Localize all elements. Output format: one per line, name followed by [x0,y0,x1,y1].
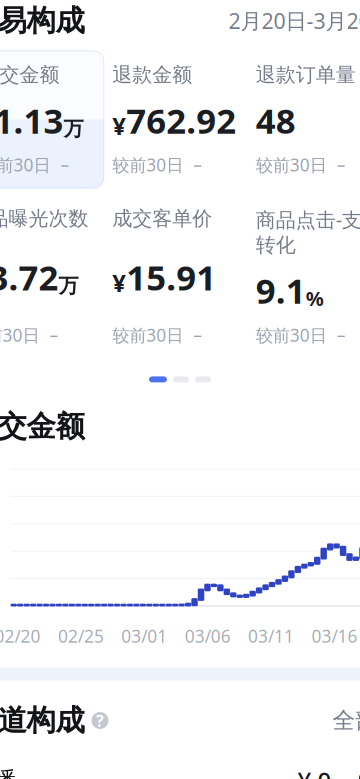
staticText: 1.13 [0,97,63,143]
staticText: 退款订单量 [256,63,356,87]
staticText: ¥ [112,110,126,142]
staticText: ¥ 0 [297,764,331,779]
staticText: 较前30日 – [0,323,58,346]
staticText: 较前30日 – [112,323,202,346]
staticText: 02/25 [58,624,104,647]
staticText: ¥ [112,267,126,299]
button[interactable]: 全部 [332,707,360,734]
staticText: 48 [256,97,296,143]
staticText: 成交金额 [0,408,84,444]
staticText: 15.91 [126,254,216,300]
staticText: 成交客单价 [112,206,212,231]
staticText: 全部 [332,707,360,734]
staticText: 万 [58,274,78,298]
staticText: 02/20 [0,624,40,647]
staticText: 较前30日 – [256,323,346,346]
staticText: 03/06 [185,624,231,647]
staticText: 交易构成 [0,3,84,39]
staticText: 2月20日-3月20日 [228,6,360,35]
staticText: 03/16 [311,624,357,647]
staticText: 商品点击-支付转化 [256,206,360,257]
staticText: 762.92 [126,97,236,143]
staticText: 较前30日 – [256,153,346,176]
staticText: 成交金额 [0,63,59,87]
staticText: ? [96,710,104,731]
staticText: 0% [357,764,360,779]
staticText: 9.1 [256,267,306,313]
staticText: 渠道构成 [0,702,84,738]
staticText: 直播 [0,766,16,779]
staticText: % [306,285,324,311]
staticText: 较前30日 – [112,153,202,176]
staticText: 03/11 [248,624,294,647]
staticText: 万 [63,117,83,141]
staticText: 33.72 [0,254,58,300]
staticText: 03/01 [121,624,167,647]
staticText: 较前30日 – [0,153,69,176]
staticText: 退款金额 [112,63,192,87]
staticText: 商品曝光次数 [0,206,88,231]
